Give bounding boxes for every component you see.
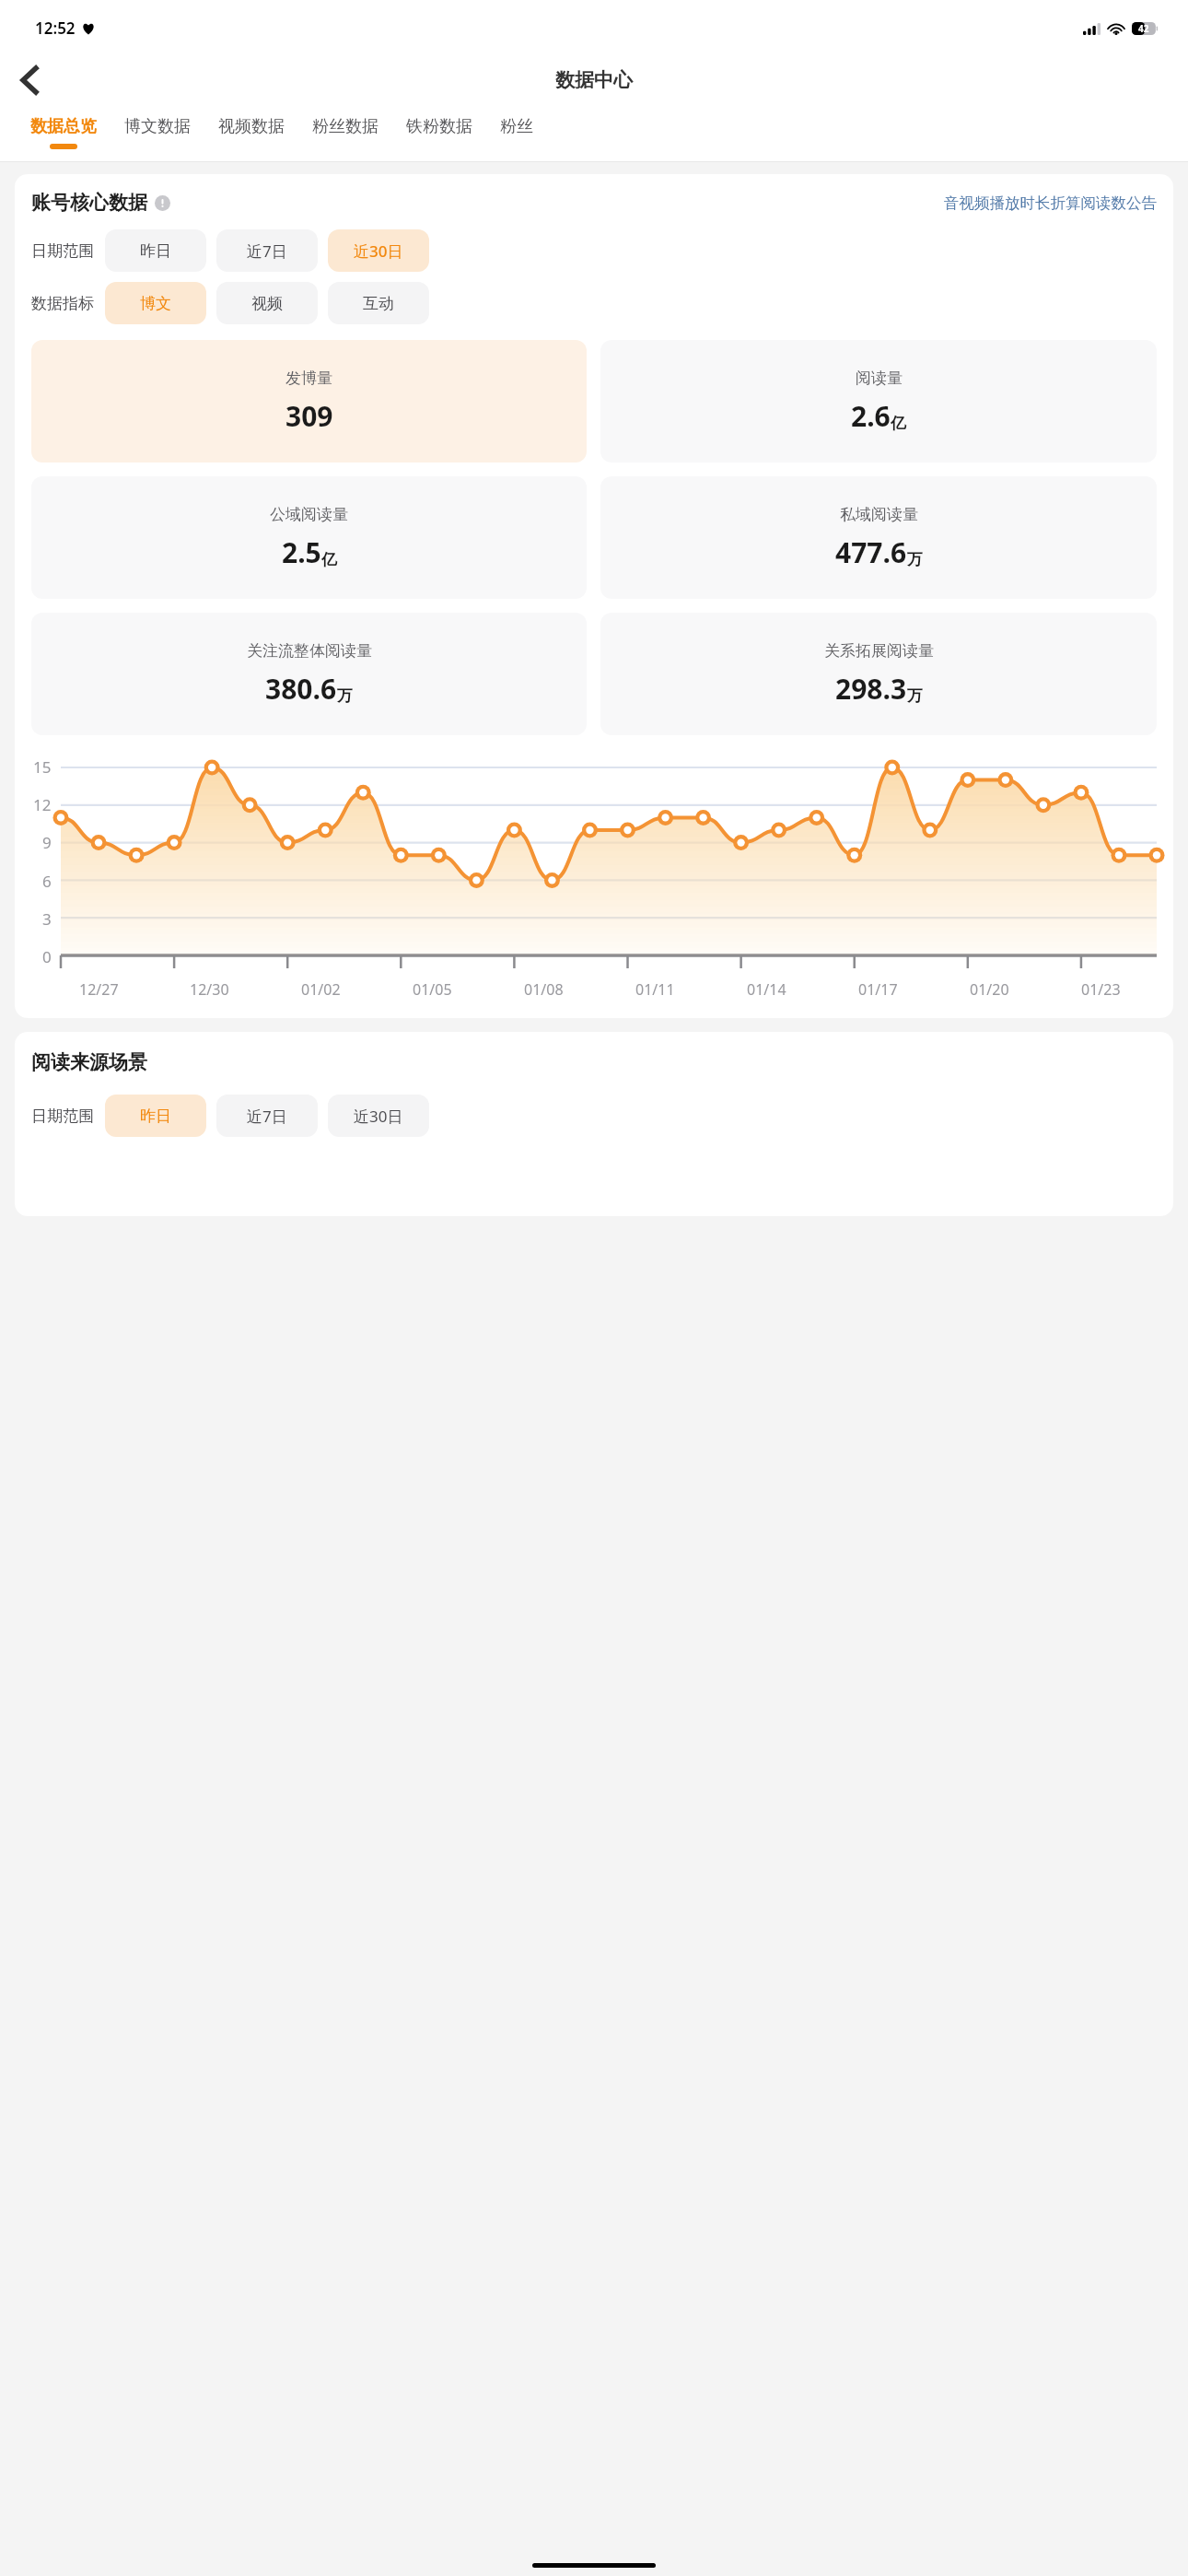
staticText: 粉丝	[500, 116, 533, 137]
staticText: 昨日	[140, 1107, 171, 1126]
staticText: 万	[907, 686, 923, 706]
staticText: 亿	[891, 414, 906, 433]
staticText: 私域阅读量	[840, 505, 918, 524]
button[interactable]: 关系拓展阅读量	[600, 613, 1157, 735]
staticText: 01/17	[858, 979, 898, 1000]
staticText: 477.6	[835, 533, 907, 571]
button[interactable]: 昨日	[105, 1095, 206, 1137]
staticText: 42	[1138, 22, 1149, 35]
button[interactable]: 粉丝	[486, 106, 547, 161]
staticText: 01/11	[635, 979, 675, 1000]
staticText: 日期范围	[31, 241, 94, 261]
staticText: 0	[42, 946, 52, 967]
staticText: 万	[907, 550, 923, 569]
staticText: 12	[33, 794, 52, 815]
button[interactable]: 近7日	[216, 1095, 318, 1137]
staticText: 阅读来源场景	[31, 1050, 147, 1074]
staticText: 2.5	[282, 533, 321, 571]
button[interactable]: 公域阅读量	[31, 476, 587, 599]
staticText: 日期范围	[31, 1107, 94, 1126]
staticText: 互动	[363, 294, 394, 313]
staticText: 亿	[321, 550, 337, 569]
staticText: 关系拓展阅读量	[824, 641, 934, 661]
button[interactable]: 关注流整体阅读量	[31, 613, 587, 735]
button[interactable]: 近30日	[328, 1095, 429, 1137]
button[interactable]: Back	[7, 58, 52, 102]
staticText: 博文	[140, 294, 171, 313]
staticText: 01/05	[413, 979, 452, 1000]
staticText: 380.6	[265, 670, 337, 708]
staticText: 12/30	[190, 979, 229, 1000]
button[interactable]: 粉丝数据	[298, 106, 392, 161]
button[interactable]: 博文数据	[111, 106, 204, 161]
staticText: 近30日	[354, 240, 403, 262]
button[interactable]: 音视频播放时长折算阅读数公告	[944, 193, 1157, 213]
staticText: 6	[42, 871, 52, 892]
button[interactable]: 昨日	[105, 229, 206, 272]
staticText: 博文数据	[124, 116, 191, 137]
staticText: 01/02	[301, 979, 341, 1000]
staticText: 298.3	[835, 670, 907, 708]
staticText: 近30日	[354, 1106, 403, 1127]
staticText: 15	[33, 756, 52, 778]
staticText: 昨日	[140, 241, 171, 261]
staticText: 2.6	[851, 397, 891, 435]
button[interactable]: 阅读量	[600, 340, 1157, 463]
staticText: 9	[42, 832, 52, 853]
staticText: 近7日	[247, 240, 287, 262]
button[interactable]: 视频数据	[204, 106, 298, 161]
button[interactable]: 铁粉数据	[392, 106, 486, 161]
staticText: 01/08	[524, 979, 564, 1000]
staticText: 01/23	[1081, 979, 1121, 1000]
button[interactable]: 近7日	[216, 229, 318, 272]
staticText: 粉丝数据	[312, 116, 379, 137]
staticText: 3	[42, 908, 52, 930]
staticText: 视频数据	[218, 116, 285, 137]
staticText: 关注流整体阅读量	[247, 641, 372, 661]
button[interactable]: 博文	[105, 282, 206, 324]
button[interactable]: 近30日	[328, 229, 429, 272]
staticText: 数据总览	[30, 116, 97, 137]
staticText: 309	[285, 397, 333, 435]
button[interactable]: 发博量	[31, 340, 587, 463]
staticText: 数据中心	[555, 68, 633, 92]
staticText: 01/14	[747, 979, 786, 1000]
button[interactable]: 数据总览	[17, 106, 111, 161]
button[interactable]: 互动	[328, 282, 429, 324]
staticText: 12:52	[35, 18, 76, 39]
staticText: 账号核心数据	[31, 191, 147, 215]
staticText: 01/20	[970, 979, 1009, 1000]
staticText: 数据指标	[31, 294, 94, 313]
staticText: 万	[337, 686, 353, 706]
staticText: 近7日	[247, 1106, 287, 1127]
staticText: 发博量	[285, 369, 332, 388]
staticText: 铁粉数据	[406, 116, 472, 137]
button[interactable]: 视频	[216, 282, 318, 324]
button[interactable]: 私域阅读量	[600, 476, 1157, 599]
staticText: 视频	[251, 294, 283, 313]
button[interactable]: Info	[155, 195, 170, 211]
staticText: 阅读量	[856, 369, 903, 388]
staticText: 公域阅读量	[270, 505, 348, 524]
staticText: 12/27	[79, 979, 119, 1000]
